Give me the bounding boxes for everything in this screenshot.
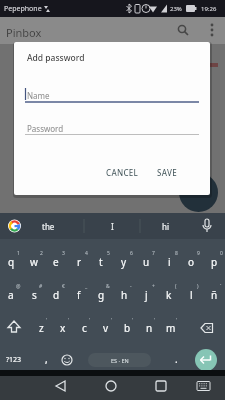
staticText: ': [154, 317, 156, 324]
button[interactable]: [0, 246, 22, 279]
staticText: b: [124, 321, 131, 335]
staticText: f: [77, 288, 81, 302]
button[interactable]: [34, 344, 58, 370]
button[interactable]: [95, 312, 116, 344]
button[interactable]: [0, 344, 32, 370]
staticText: u: [143, 255, 150, 269]
staticText: ?123: [6, 355, 22, 365]
button[interactable]: [23, 246, 45, 279]
button[interactable]: [141, 215, 196, 237]
button[interactable]: [158, 246, 180, 279]
staticText: (: [175, 283, 177, 290]
button[interactable]: CANCEL: [95, 159, 149, 185]
button[interactable]: [198, 215, 218, 237]
staticText: Add password: [27, 52, 85, 64]
button[interactable]: [164, 344, 188, 370]
staticText: m: [166, 321, 176, 335]
staticText: CANCEL: [106, 167, 139, 178]
button[interactable]: [28, 215, 84, 237]
button[interactable]: [58, 344, 80, 370]
staticText: Pepephone: [4, 4, 42, 14]
button[interactable]: [0, 279, 22, 312]
staticText: 23%: [170, 5, 182, 13]
button[interactable]: [201, 18, 223, 43]
staticText: #: [39, 283, 43, 290]
button[interactable]: [180, 246, 202, 279]
button[interactable]: [179, 173, 218, 212]
button[interactable]: [25, 84, 199, 104]
staticText: 8: [175, 250, 178, 257]
staticText: 3: [62, 250, 65, 257]
button[interactable]: SAVE: [144, 159, 190, 185]
staticText: 9: [197, 250, 200, 257]
button[interactable]: [90, 279, 112, 312]
staticText: SAVE: [157, 167, 177, 178]
button[interactable]: [145, 376, 180, 400]
button[interactable]: [52, 312, 73, 344]
staticText: t: [99, 255, 103, 269]
button[interactable]: [139, 312, 160, 344]
button[interactable]: [160, 312, 181, 344]
button[interactable]: [45, 279, 67, 312]
staticText: e: [53, 255, 59, 269]
button[interactable]: [23, 279, 45, 312]
staticText: ': [132, 317, 134, 324]
staticText: ': [89, 317, 91, 324]
button[interactable]: [68, 279, 90, 312]
button[interactable]: [113, 279, 135, 312]
staticText: 0: [220, 250, 223, 257]
staticText: q: [8, 255, 15, 269]
button[interactable]: [74, 312, 95, 344]
staticText: y: [121, 255, 127, 269]
button[interactable]: [45, 246, 67, 279]
staticText: ES · EN: [111, 357, 129, 364]
button[interactable]: [203, 246, 225, 279]
button[interactable]: [180, 279, 202, 312]
staticText: ': [176, 317, 178, 324]
button[interactable]: [171, 18, 195, 43]
button[interactable]: [25, 117, 199, 136]
button[interactable]: [113, 246, 135, 279]
staticText: w: [30, 255, 38, 269]
button[interactable]: [95, 376, 130, 400]
button[interactable]: [203, 279, 225, 312]
staticText: €: [62, 283, 65, 290]
button[interactable]: [68, 246, 90, 279]
button[interactable]: ES · EN: [88, 353, 151, 367]
button[interactable]: [195, 349, 217, 371]
button[interactable]: [45, 376, 80, 400]
button[interactable]: [135, 279, 157, 312]
staticText: o: [188, 255, 195, 269]
staticText: @: [16, 283, 21, 290]
staticText: p: [211, 255, 218, 269]
staticText: ñ: [211, 288, 218, 302]
staticText: 5: [107, 250, 110, 257]
staticText: Name: [27, 90, 50, 101]
button[interactable]: [192, 376, 216, 400]
button[interactable]: [6, 218, 23, 234]
button[interactable]: [196, 312, 224, 344]
staticText: Password: [27, 123, 64, 134]
staticText: l: [190, 288, 193, 302]
button[interactable]: Pinbox: [0, 17, 225, 44]
staticText: ': [46, 317, 48, 324]
staticText: a: [8, 288, 14, 302]
button[interactable]: [86, 215, 139, 237]
staticText: 6: [130, 250, 133, 257]
staticText: 2: [40, 250, 43, 257]
staticText: .: [175, 352, 178, 366]
button[interactable]: [0, 312, 30, 344]
staticText: d: [53, 288, 60, 302]
staticText: ': [68, 317, 70, 324]
staticText: n: [146, 321, 153, 335]
staticText: v: [103, 321, 109, 335]
staticText: i: [168, 255, 171, 269]
staticText: ): [197, 283, 199, 290]
button[interactable]: [135, 246, 157, 279]
staticText: _: [85, 283, 88, 290]
button[interactable]: [117, 312, 138, 344]
button[interactable]: [31, 312, 52, 344]
button[interactable]: [90, 246, 112, 279]
button[interactable]: [158, 279, 180, 312]
staticText: I: [111, 221, 114, 232]
